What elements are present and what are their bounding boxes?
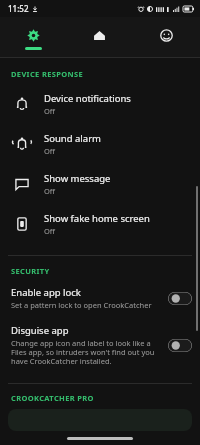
button[interactable]: Enable app lock	[0, 279, 200, 317]
button[interactable]: Profile tab	[133, 17, 200, 58]
button[interactable]: Disguise app	[0, 317, 200, 374]
staticText: Change app icon and label to look like a…	[11, 338, 162, 367]
staticText: Enable app lock	[11, 286, 81, 299]
staticText: DEVICE RESPONSE	[11, 69, 83, 79]
staticText: Sound alarm	[44, 132, 101, 145]
staticText: Off	[44, 186, 56, 196]
staticText: SECURITY	[11, 266, 50, 276]
staticText: Show message	[44, 172, 111, 185]
button[interactable]: Toggle, off	[168, 339, 192, 352]
staticText: Disguise app	[11, 324, 69, 337]
button[interactable]: Sound alarm	[0, 124, 200, 164]
staticText: Show fake home screen	[44, 212, 150, 225]
staticText: Off	[44, 106, 56, 116]
button[interactable]: Show message	[0, 164, 200, 204]
staticText: Set a pattern lock to open CrookCatcher	[11, 300, 152, 310]
button[interactable]: Toggle, off	[168, 292, 192, 305]
staticText: Off	[44, 226, 56, 236]
staticText: CROOKCATCHER PRO	[11, 393, 94, 403]
staticText: Off	[44, 146, 56, 156]
button[interactable]: Show fake home screen	[0, 204, 200, 244]
staticText: 11:52	[8, 3, 29, 14]
button[interactable]: Device notifications	[0, 84, 200, 124]
button[interactable]: Home tab	[66, 17, 133, 58]
staticText: Device notifications	[44, 92, 131, 105]
button[interactable]: Settings tab	[0, 17, 66, 58]
